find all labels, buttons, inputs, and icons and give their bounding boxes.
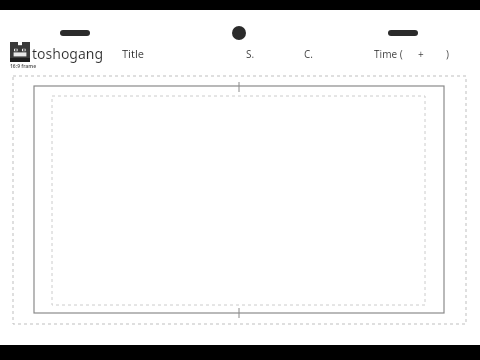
- button[interactable]: toshogang: [32, 44, 104, 63]
- button[interactable]: Right handle: [388, 30, 418, 36]
- button[interactable]: Time (: [374, 47, 403, 61]
- button[interactable]: +: [418, 47, 424, 61]
- button[interactable]: Center marker: [232, 26, 246, 40]
- button[interactable]: toshogang logo: [10, 42, 30, 62]
- button[interactable]: C.: [304, 47, 313, 61]
- staticText: ): [446, 47, 449, 61]
- button[interactable]: Title: [122, 46, 144, 61]
- button[interactable]: Left handle: [60, 30, 90, 36]
- button[interactable]: S.: [246, 47, 255, 61]
- staticText: 16:9 frame: [10, 63, 37, 70]
- button[interactable]: 16:9 framing guide: [0, 10, 480, 345]
